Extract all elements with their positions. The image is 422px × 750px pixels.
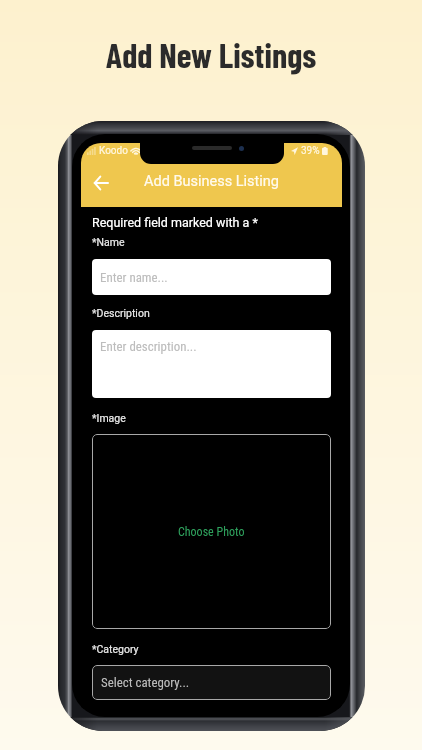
staticText: Select category... xyxy=(101,675,190,690)
staticText: Koodo xyxy=(99,145,128,157)
staticText: Add Business Listing xyxy=(144,173,279,190)
button[interactable]: Back xyxy=(87,169,115,197)
staticText: *Name xyxy=(92,236,125,248)
button[interactable]: Enter name... xyxy=(92,259,331,295)
staticText: *Description xyxy=(92,307,150,319)
button[interactable]: Choose Photo xyxy=(92,434,331,629)
button[interactable]: Select category... xyxy=(92,665,331,700)
staticText: Choose Photo xyxy=(178,525,245,539)
button[interactable]: Koodo xyxy=(81,143,342,207)
staticText: Enter description... xyxy=(100,339,197,354)
button[interactable]: Enter description... xyxy=(92,330,331,398)
staticText: Enter name... xyxy=(100,270,168,285)
staticText: *Category xyxy=(92,643,139,655)
staticText: Add New Listings xyxy=(0,34,422,75)
staticText: 39% xyxy=(301,145,320,157)
staticText: Required field marked with a * xyxy=(92,215,258,230)
staticText: *Image xyxy=(92,412,126,424)
